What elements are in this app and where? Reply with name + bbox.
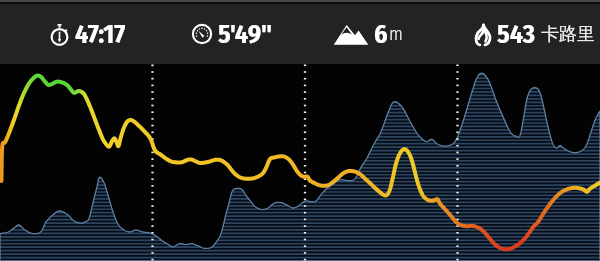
button[interactable]: Duration [40, 4, 136, 64]
staticText: 47:17 [75, 19, 126, 50]
staticText: 543 [497, 19, 536, 50]
button[interactable]: Calories [463, 4, 600, 64]
staticText: m [389, 23, 403, 45]
button[interactable]: Pace [182, 4, 283, 64]
staticText: 卡路里 [541, 23, 595, 46]
staticText: 5'49" [218, 19, 273, 50]
staticText: 6 [374, 19, 388, 50]
button[interactable]: Elevation [322, 4, 413, 64]
